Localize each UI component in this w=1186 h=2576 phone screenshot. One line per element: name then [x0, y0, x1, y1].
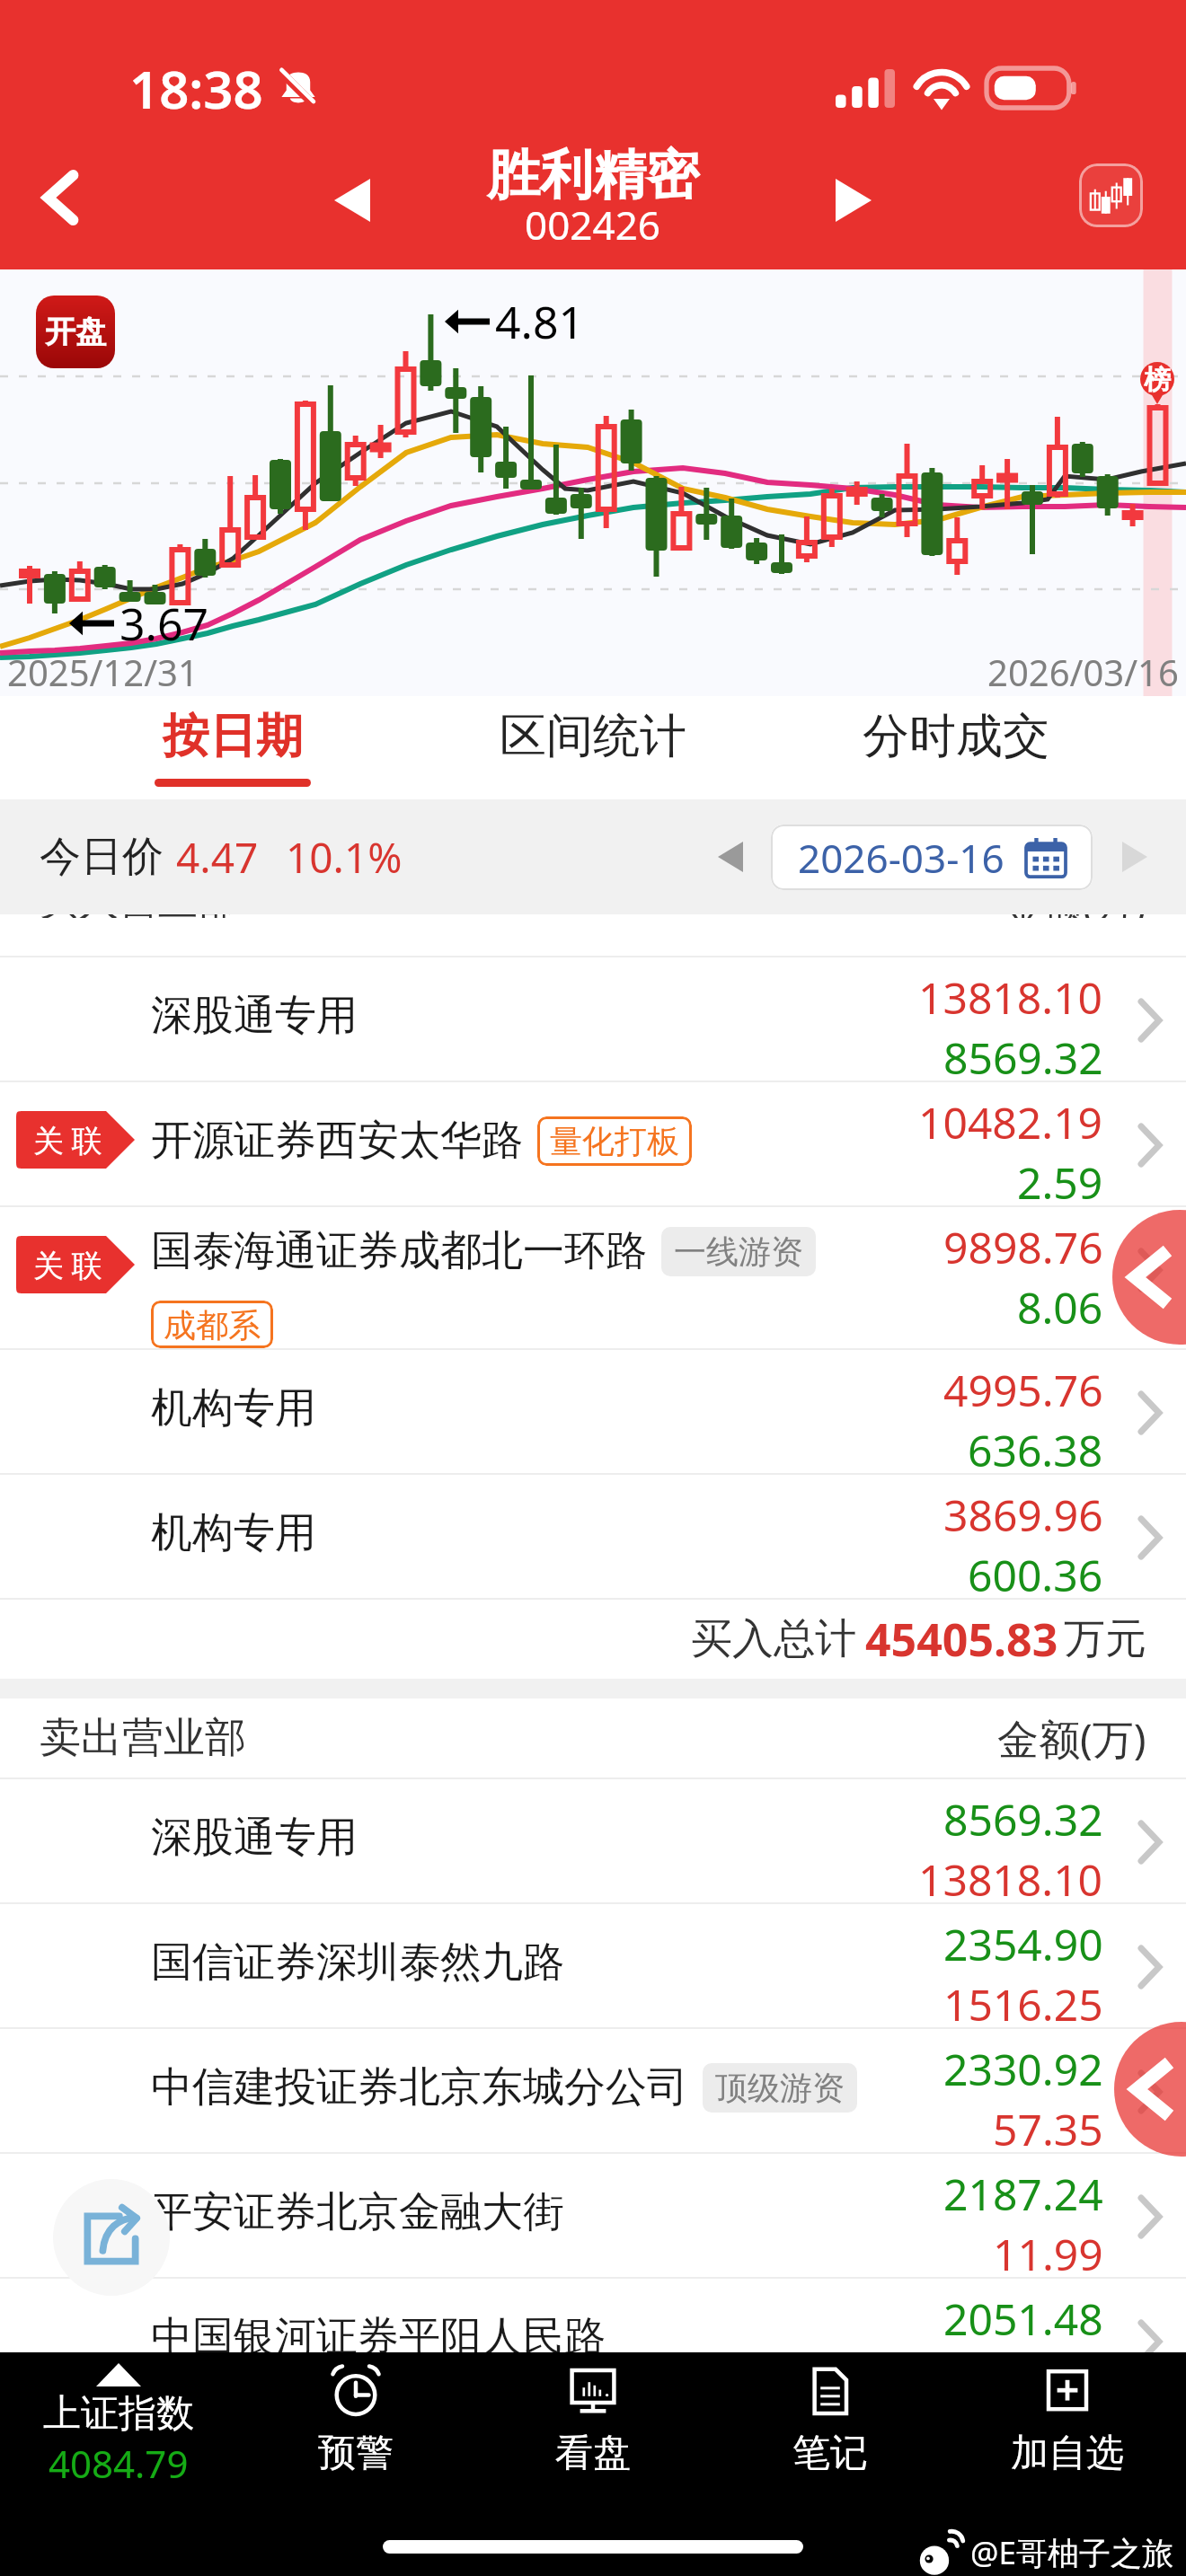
staticText: 4.47 — [176, 829, 259, 886]
staticText: 中信建投证券北京东城分公司 — [151, 2061, 688, 2113]
staticText: 笔记 — [792, 2430, 868, 2477]
staticText: @E哥柚子之旅 — [970, 2531, 1173, 2574]
staticText: 2.59 — [1017, 1153, 1103, 1205]
staticText: 2025/12/31 — [7, 648, 199, 696]
button[interactable]: Previous day — [699, 825, 762, 888]
staticText: 国泰海通证券成都北一环路 — [151, 1225, 647, 1277]
staticText: 4084.79 — [49, 2438, 189, 2489]
staticText: 2026-03-16 — [798, 831, 1005, 885]
staticText: 关 联 — [33, 1244, 102, 1285]
staticText: 卖出营业部 — [40, 1712, 246, 1764]
button[interactable]: 中国银河证券平阳人民路 — [0, 2279, 1186, 2402]
button[interactable]: 深股通专用 — [0, 957, 1186, 1081]
staticText: 4.81 — [495, 291, 585, 352]
button[interactable]: 国信证券深圳泰然九路 — [0, 1904, 1186, 2027]
staticText: 9898.76 — [943, 1218, 1103, 1276]
staticText: 平安证券北京金融大街 — [151, 2186, 564, 2238]
button[interactable]: Next day — [1103, 825, 1166, 888]
button[interactable]: 加自选 — [949, 2352, 1186, 2477]
staticText: 国信证券深圳泰然九路 — [151, 1936, 564, 1989]
staticText: 胜利精密 — [487, 142, 699, 208]
staticText: 1516.25 — [943, 1975, 1103, 2027]
staticText: 开盘 — [45, 313, 106, 351]
button[interactable]: 中信建投证券北京东城分公司 — [0, 2029, 1186, 2152]
staticText: 深股通专用 — [151, 990, 358, 1042]
staticText: 一线游资 — [674, 1231, 803, 1272]
staticText: 榜 — [1144, 363, 1171, 397]
staticText: 上证指数 — [43, 2390, 194, 2438]
staticText: 买入总计 — [691, 1613, 856, 1665]
staticText: 机构专用 — [151, 1382, 316, 1434]
staticText: 深股通专用 — [151, 1812, 358, 1864]
button[interactable]: Candlestick chart — [1079, 163, 1143, 227]
staticText: 预警 — [318, 2430, 394, 2477]
staticText: 2051.48 — [943, 2289, 1103, 2348]
staticText: 13818.10 — [918, 1850, 1103, 1902]
staticText: 8.06 — [1017, 1278, 1103, 1337]
staticText: 量化打板 — [550, 1121, 679, 1161]
staticText: 002426 — [525, 198, 661, 251]
staticText: 45405.83 — [865, 1609, 1058, 1670]
staticText: 加自选 — [1011, 2430, 1124, 2477]
staticText: 10482.19 — [918, 1093, 1103, 1151]
staticText: 13818.10 — [918, 968, 1103, 1027]
button[interactable]: Next stock — [800, 146, 907, 254]
button[interactable]: Share — [53, 2179, 170, 2296]
staticText: 636.38 — [968, 1421, 1103, 1473]
staticText: 开源证券西安太华路 — [151, 1115, 523, 1167]
staticText: 买入营业部 — [40, 914, 237, 918]
staticText: 金额(万) — [997, 1710, 1146, 1767]
staticText: 10.1% — [286, 829, 403, 886]
button[interactable]: 区间统计 — [464, 696, 722, 799]
staticText: 今日价 — [40, 831, 164, 883]
staticText: 机构专用 — [151, 1507, 316, 1559]
button[interactable]: 2026-03-16 — [771, 825, 1093, 890]
staticText: 区间统计 — [500, 707, 686, 766]
staticText: 万元 — [1064, 1613, 1146, 1665]
staticText: 18:38 — [129, 53, 263, 124]
staticText: 11.99 — [993, 2225, 1103, 2277]
staticText: 4995.76 — [943, 1361, 1103, 1419]
staticText: 555.48 — [968, 2350, 1103, 2402]
button[interactable]: 笔记 — [712, 2352, 949, 2477]
staticText: 关 联 — [33, 1119, 102, 1160]
staticText: 中国银河证券平阳人民路 — [151, 2311, 606, 2363]
button[interactable]: 预警 — [237, 2352, 474, 2477]
staticText: 分时成交 — [863, 707, 1049, 766]
button[interactable]: 深股通专用 — [0, 1779, 1186, 1902]
button[interactable]: 机构专用 — [0, 1350, 1186, 1473]
button[interactable]: Back — [6, 144, 114, 251]
button[interactable]: 关 联 — [0, 1082, 1186, 1205]
staticText: 2354.90 — [943, 1915, 1103, 1973]
staticText: 2187.24 — [943, 2165, 1103, 2223]
staticText: 金额(万) — [1004, 914, 1146, 918]
staticText: 3.67 — [119, 593, 209, 654]
button[interactable]: 机构专用 — [0, 1475, 1186, 1598]
button[interactable]: 按日期 — [119, 696, 347, 799]
staticText: 3869.96 — [943, 1486, 1103, 1544]
staticText: 看盘 — [555, 2430, 631, 2477]
button[interactable]: 分时成交 — [827, 696, 1085, 799]
staticText: 按日期 — [163, 707, 303, 766]
button[interactable]: 关 联 — [0, 1207, 1186, 1348]
button[interactable]: 上证指数 — [0, 2352, 237, 2489]
button[interactable]: Collapse panel — [1114, 2022, 1186, 2157]
staticText: 成都系 — [164, 1305, 261, 1344]
button[interactable]: 平安证券北京金融大街 — [0, 2154, 1186, 2277]
staticText: 顶级游资 — [715, 2068, 845, 2108]
staticText: 8569.32 — [943, 1028, 1103, 1081]
staticText: 57.35 — [993, 2100, 1103, 2152]
staticText: 2026/03/16 — [987, 648, 1179, 696]
staticText: 2330.92 — [943, 2040, 1103, 2098]
staticText: 8569.32 — [943, 1790, 1103, 1848]
button[interactable]: Previous stock — [298, 146, 406, 254]
button[interactable]: 看盘 — [474, 2352, 712, 2477]
staticText: 600.36 — [968, 1546, 1103, 1598]
button[interactable]: Collapse panel — [1112, 1210, 1186, 1345]
